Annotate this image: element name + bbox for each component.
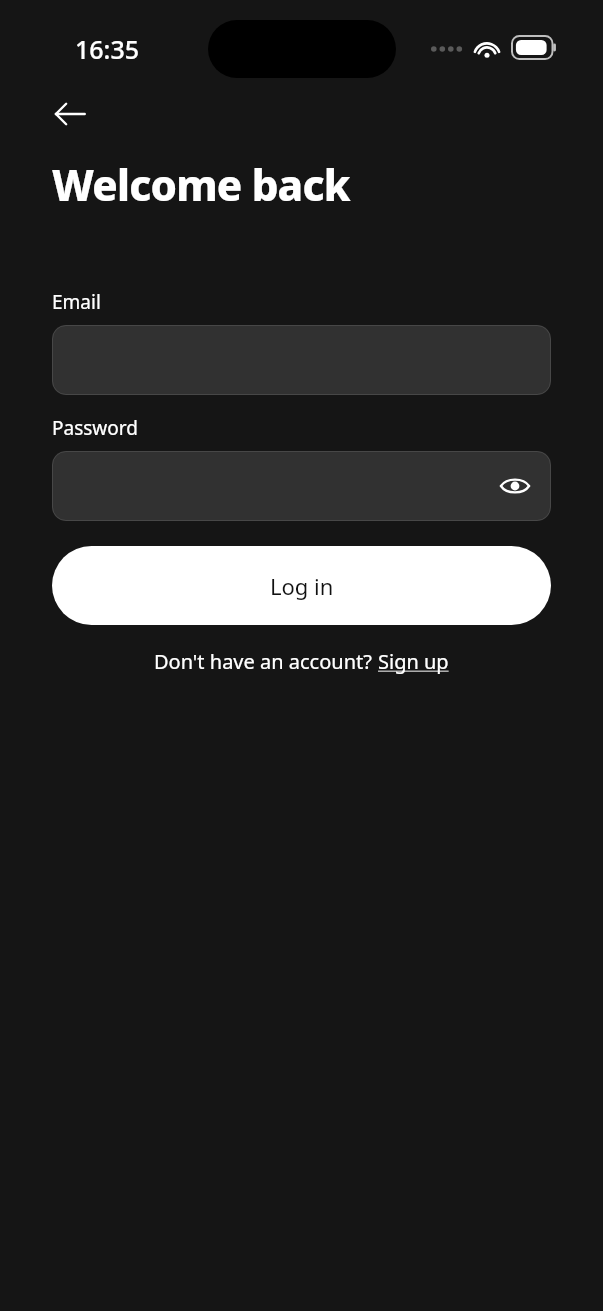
staticText: Password [52,415,138,441]
button[interactable]: Back [42,86,98,142]
button[interactable]: Sign up [378,648,449,675]
staticText: Log in [270,571,334,601]
button[interactable]: Log in [52,546,551,625]
button[interactable]: Show password [52,451,551,521]
staticText: Welcome back [52,156,350,213]
staticText: Sign up [378,648,449,675]
button[interactable]: Show password [493,464,537,508]
staticText: Don't have an account? [154,648,378,675]
staticText: Email [52,289,101,315]
button[interactable] [52,325,551,395]
staticText: 16:35 [75,32,140,66]
